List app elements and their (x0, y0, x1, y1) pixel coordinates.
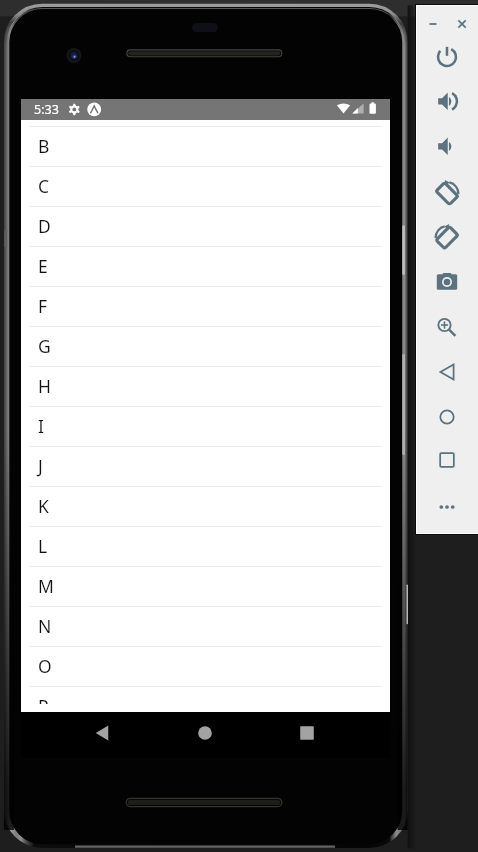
button[interactable]: Back (85, 716, 119, 750)
button[interactable]: Home (188, 716, 222, 750)
staticText: I (38, 414, 44, 438)
button[interactable]: Minimize (425, 16, 441, 32)
button[interactable]: F (21, 286, 390, 326)
button[interactable]: Close (454, 16, 470, 32)
button[interactable]: E (21, 246, 390, 286)
button[interactable]: C (21, 166, 390, 206)
button[interactable]: B (21, 126, 390, 166)
staticText: G (38, 334, 51, 358)
button[interactable]: Volume up (432, 86, 462, 116)
staticText: H (38, 374, 51, 398)
button[interactable]: P (21, 686, 390, 704)
button[interactable]: H (21, 366, 390, 406)
staticText: J (38, 454, 43, 478)
staticText: C (38, 174, 50, 198)
button[interactable]: D (21, 206, 390, 246)
staticText: D (38, 214, 51, 238)
button[interactable]: N (21, 606, 390, 646)
staticText: O (38, 654, 52, 678)
button[interactable]: O (21, 646, 390, 686)
button[interactable]: Rotate left (432, 178, 462, 208)
button[interactable]: Overview (432, 445, 462, 475)
button[interactable]: Home (432, 402, 462, 432)
staticText: 5:33 (34, 101, 59, 118)
button[interactable]: K (21, 486, 390, 526)
button[interactable]: I (21, 406, 390, 446)
button[interactable]: Rotate right (432, 222, 462, 252)
button[interactable]: Zoom in (432, 310, 462, 340)
button[interactable]: G (21, 326, 390, 366)
staticText: L (38, 534, 48, 558)
button[interactable]: Volume down (432, 131, 462, 161)
button[interactable]: M (21, 566, 390, 606)
staticText: N (38, 614, 52, 638)
staticText: P (38, 694, 49, 704)
staticText: E (38, 254, 48, 278)
button[interactable]: Power (432, 42, 462, 72)
button[interactable]: J (21, 446, 390, 486)
staticText: M (38, 574, 54, 598)
button[interactable]: More (432, 492, 462, 522)
staticText: K (38, 494, 49, 518)
staticText: B (38, 134, 50, 158)
staticText: F (38, 294, 48, 318)
button[interactable]: Take screenshot (432, 267, 462, 297)
button[interactable]: Back (432, 357, 462, 387)
button[interactable]: L (21, 526, 390, 566)
button[interactable]: Recent apps (290, 716, 324, 750)
